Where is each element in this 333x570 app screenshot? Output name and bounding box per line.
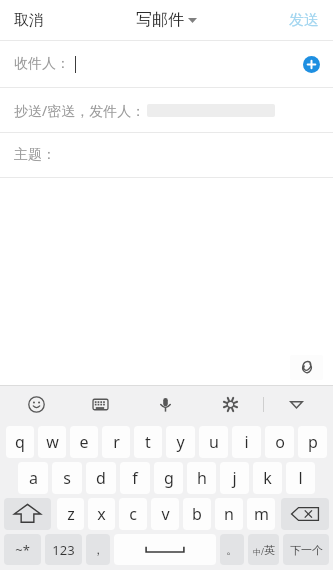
staticText: 英 xyxy=(264,543,275,557)
button[interactable]: 添加收件人 xyxy=(303,56,320,73)
staticText: u xyxy=(209,431,219,453)
staticText: p xyxy=(308,431,318,453)
button[interactable]: 表情 xyxy=(4,386,68,422)
button[interactable]: x xyxy=(88,498,115,530)
staticText: m xyxy=(254,503,269,525)
staticText: x xyxy=(97,503,106,525)
button[interactable]: h xyxy=(187,462,216,494)
button[interactable]: d xyxy=(86,462,116,494)
button[interactable]: s xyxy=(52,462,82,494)
button[interactable]: 写邮件 xyxy=(128,4,205,36)
button[interactable]: 中英文切换 xyxy=(248,534,279,565)
button[interactable]: p xyxy=(298,426,327,458)
staticText: f xyxy=(132,467,138,489)
staticText: z xyxy=(67,503,75,525)
button[interactable]: 删除 xyxy=(281,498,329,530)
staticText: e xyxy=(79,431,89,453)
button[interactable]: j xyxy=(220,462,249,494)
button[interactable]: 空格 xyxy=(114,534,216,565)
button[interactable]: 切换大小写 xyxy=(4,498,51,530)
button[interactable]: 。 xyxy=(220,534,244,565)
staticText: b xyxy=(192,503,202,525)
button[interactable]: ， xyxy=(86,534,110,565)
staticText: t xyxy=(145,431,151,453)
button[interactable]: 抄送/密送，发件人： xyxy=(0,88,333,132)
button[interactable]: f xyxy=(120,462,150,494)
button[interactable]: o xyxy=(265,426,294,458)
button[interactable]: 123 xyxy=(45,534,82,565)
staticText: y xyxy=(176,431,185,453)
staticText: j xyxy=(232,467,237,489)
staticText: v xyxy=(161,503,170,525)
button[interactable]: e xyxy=(70,426,98,458)
button[interactable]: 键盘 xyxy=(68,386,133,422)
button[interactable]: a xyxy=(18,462,48,494)
button[interactable]: 发送 xyxy=(275,0,333,40)
staticText: l xyxy=(298,467,303,489)
staticText: 中 xyxy=(253,547,261,557)
staticText: 123 xyxy=(52,541,75,559)
staticText: h xyxy=(197,467,207,489)
staticText: n xyxy=(224,503,234,525)
staticText: / xyxy=(261,546,264,557)
staticText: g xyxy=(164,467,174,489)
button[interactable]: c xyxy=(119,498,147,530)
button[interactable]: t xyxy=(134,426,162,458)
button[interactable]: k xyxy=(253,462,282,494)
button[interactable]: l xyxy=(286,462,315,494)
button[interactable]: 添加附件 xyxy=(290,355,323,380)
staticText: 。 xyxy=(226,542,238,557)
button[interactable]: r xyxy=(102,426,130,458)
staticText: 下一个 xyxy=(290,543,323,557)
staticText: 写邮件 xyxy=(136,10,184,30)
button[interactable]: q xyxy=(6,426,34,458)
staticText: ， xyxy=(92,542,104,557)
button[interactable]: 下一个 xyxy=(283,534,329,565)
staticText: ~* xyxy=(15,541,30,559)
button[interactable]: n xyxy=(215,498,243,530)
button[interactable]: g xyxy=(154,462,183,494)
button[interactable]: 语音输入 xyxy=(133,386,198,422)
staticText: d xyxy=(96,467,106,489)
staticText: w xyxy=(46,431,59,453)
button[interactable]: i xyxy=(232,426,261,458)
staticText: 主题： xyxy=(14,146,56,164)
button[interactable]: 设置 xyxy=(198,386,263,422)
staticText: 抄送/密送，发件人： xyxy=(14,101,146,120)
staticText: 收件人： xyxy=(14,55,70,73)
staticText: q xyxy=(15,431,25,453)
staticText: o xyxy=(275,431,285,453)
staticText: i xyxy=(244,431,249,453)
button[interactable]: u xyxy=(199,426,228,458)
staticText: s xyxy=(63,467,71,489)
button[interactable]: 收件人： xyxy=(0,41,333,87)
button[interactable]: w xyxy=(38,426,66,458)
button[interactable]: b xyxy=(183,498,211,530)
staticText: 发送 xyxy=(289,11,319,30)
button[interactable]: ~* xyxy=(4,534,41,565)
staticText: c xyxy=(129,503,137,525)
button[interactable]: y xyxy=(166,426,195,458)
staticText: 取消 xyxy=(14,11,44,30)
button[interactable]: v xyxy=(151,498,179,530)
button[interactable]: z xyxy=(57,498,84,530)
button[interactable]: 收起键盘 xyxy=(264,386,329,422)
staticText: a xyxy=(29,467,38,489)
staticText: r xyxy=(113,431,120,453)
button[interactable]: m xyxy=(247,498,275,530)
staticText: k xyxy=(263,467,272,489)
button[interactable]: 取消 xyxy=(0,0,58,40)
button[interactable]: 主题： xyxy=(0,133,333,177)
